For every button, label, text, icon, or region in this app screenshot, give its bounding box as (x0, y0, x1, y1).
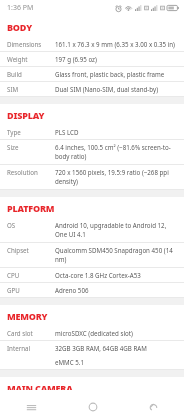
button[interactable]: Home (62, 394, 123, 420)
staticText: Dimensions (7, 40, 42, 48)
button[interactable]: PLATFORM (0, 197, 184, 218)
button[interactable]: Card slot (0, 326, 184, 341)
staticText: Size (7, 143, 19, 151)
staticText: PLS LCD (55, 128, 79, 136)
button[interactable]: eMMC 5.1 (0, 355, 184, 370)
staticText: Build (7, 70, 22, 78)
staticText: OS (7, 221, 16, 229)
staticText: Adreno 506 (55, 286, 89, 294)
staticText: Qualcomm SDM450 Snapdragon 450 (14 nm) (55, 246, 178, 264)
staticText: Type (7, 128, 21, 136)
staticText: eMMC 5.1 (55, 358, 84, 366)
button[interactable]: Size (0, 140, 184, 165)
staticText: BODY (7, 21, 32, 33)
staticText: CPU (7, 271, 20, 279)
button[interactable]: Dimensions (0, 37, 184, 52)
button[interactable]: Internal (0, 341, 184, 355)
staticText: 161.1 x 76.3 x 9 mm (6.35 x 3.00 x 0.35 … (55, 40, 175, 48)
button[interactable]: Recent apps (0, 394, 62, 420)
button[interactable]: MEMORY (0, 305, 184, 326)
staticText: Card slot (7, 329, 33, 337)
button[interactable]: SIM (0, 82, 184, 97)
staticText: Weight (7, 55, 28, 63)
button[interactable]: Build (0, 67, 184, 82)
button[interactable]: DISPLAY (0, 104, 184, 125)
staticText: GPU (7, 286, 20, 294)
staticText: microSDXC (dedicated slot) (55, 329, 133, 337)
button[interactable]: Back (123, 394, 184, 420)
staticText: DISPLAY (7, 109, 45, 121)
button[interactable]: OS (0, 218, 184, 243)
button[interactable]: MAIN CAMERA (0, 377, 184, 394)
button[interactable]: GPU (0, 283, 184, 298)
staticText: Glass front, plastic back, plastic frame (55, 70, 165, 78)
staticText: Android 10, upgradable to Android 12, On… (55, 221, 178, 239)
button[interactable]: Weight (0, 52, 184, 67)
button[interactable]: BODY (0, 16, 184, 37)
staticText: 720 x 1560 pixels, 19.5:9 ratio (~268 pp… (55, 168, 178, 186)
staticText: Dual SIM (Nano-SIM, dual stand-by) (55, 85, 158, 93)
staticText: Internal (7, 344, 31, 352)
staticText: 6.4 inches, 100.5 cm² (~81.6% screen-to-… (55, 143, 178, 161)
button[interactable]: Resolution (0, 165, 184, 190)
button[interactable]: CPU (0, 268, 184, 283)
staticText: PLATFORM (7, 202, 55, 214)
button[interactable]: Chipset (0, 243, 184, 268)
staticText: SIM (7, 85, 19, 93)
staticText: MAIN CAMERA (7, 382, 73, 390)
staticText: Octa-core 1.8 GHz Cortex-A53 (55, 271, 141, 279)
button[interactable]: Type (0, 125, 184, 140)
staticText: Resolution (7, 168, 38, 176)
staticText: 32GB 3GB RAM, 64GB 4GB RAM (55, 344, 147, 352)
staticText: 1:36 PM (7, 3, 34, 13)
staticText: MEMORY (7, 310, 48, 322)
staticText: 197 g (6.95 oz) (55, 55, 97, 63)
staticText: Chipset (7, 246, 29, 254)
